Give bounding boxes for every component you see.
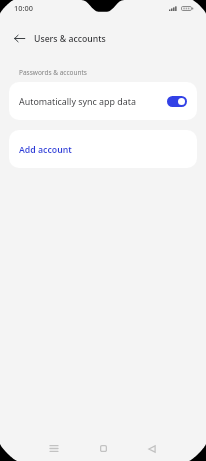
staticText: Add account bbox=[19, 144, 72, 156]
button[interactable]: Automatically sync app data bbox=[167, 96, 187, 107]
button[interactable]: Back bbox=[140, 437, 164, 461]
button[interactable]: Recent apps bbox=[42, 436, 66, 460]
staticText: Users & accounts bbox=[34, 33, 106, 45]
staticText: Passwords & accounts bbox=[19, 68, 87, 77]
staticText: Automatically sync app data bbox=[19, 95, 137, 107]
button[interactable]: Back bbox=[9, 28, 29, 48]
button[interactable]: Add account bbox=[9, 130, 197, 168]
button[interactable]: Automatically sync app data bbox=[9, 82, 197, 120]
staticText: 10:00 bbox=[14, 3, 33, 13]
button[interactable]: Home bbox=[91, 436, 115, 460]
